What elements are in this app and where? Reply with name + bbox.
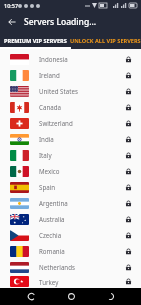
staticText: Turkey	[39, 278, 123, 286]
button[interactable]: Back	[4, 14, 20, 30]
staticText: Indonesia	[39, 55, 123, 63]
button[interactable]: Indonesia	[0, 51, 141, 67]
staticText: PREMIUM VIP SERVERS	[4, 37, 67, 45]
staticText: 10:57	[4, 2, 19, 9]
staticText: Australia	[39, 215, 123, 223]
other: Locked	[123, 182, 134, 193]
staticText: UNLOCK ALL VIP SERVERS	[70, 37, 141, 45]
staticText: Canada	[39, 103, 123, 111]
staticText: Mexico	[39, 167, 123, 175]
staticText: Czechia	[39, 231, 123, 239]
other: Locked	[123, 198, 134, 209]
button[interactable]: Back	[22, 288, 40, 305]
button[interactable]: Home	[62, 288, 80, 305]
button[interactable]: Italy	[0, 147, 141, 163]
other: Locked	[123, 166, 134, 177]
button[interactable]: Czechia	[0, 227, 141, 243]
button[interactable]: Mexico	[0, 163, 141, 179]
button[interactable]: Australia	[0, 211, 141, 227]
staticText: Ireland	[39, 71, 123, 79]
button[interactable]: PREMIUM VIP SERVERS	[0, 33, 70, 49]
staticText: Argentina	[39, 199, 123, 207]
other: Locked	[123, 102, 134, 113]
other: Locked	[123, 214, 134, 225]
button[interactable]: Canada	[0, 99, 141, 115]
button[interactable]: Spain	[0, 179, 141, 195]
button[interactable]: Argentina	[0, 195, 141, 211]
button[interactable]: UNLOCK ALL VIP SERVERS	[70, 33, 141, 49]
button[interactable]: United States	[0, 83, 141, 99]
button[interactable]: Recents	[101, 288, 119, 305]
button[interactable]: Ireland	[0, 67, 141, 83]
other: Locked	[123, 262, 134, 273]
other: Locked	[123, 86, 134, 97]
other: Locked	[123, 118, 134, 129]
staticText: Servers Loading...	[24, 16, 97, 28]
other: Locked	[123, 70, 134, 81]
button[interactable]: Netherlands	[0, 259, 141, 275]
staticText: United States	[39, 87, 123, 95]
staticText: Netherlands	[39, 263, 123, 271]
other: Locked	[123, 230, 134, 241]
staticText: Switzerland	[39, 119, 123, 127]
button[interactable]: Switzerland	[0, 115, 141, 131]
other: Locked	[123, 134, 134, 145]
other: Locked	[123, 246, 134, 257]
button[interactable]: India	[0, 131, 141, 147]
staticText: Romania	[39, 247, 123, 255]
other: Locked	[123, 54, 134, 65]
other: Locked	[123, 150, 134, 161]
button[interactable]: Turkey	[0, 275, 141, 288]
other: Locked	[123, 276, 134, 287]
staticText: India	[39, 135, 123, 143]
staticText: Italy	[39, 151, 123, 159]
staticText: Spain	[39, 183, 123, 191]
button[interactable]: Romania	[0, 243, 141, 259]
